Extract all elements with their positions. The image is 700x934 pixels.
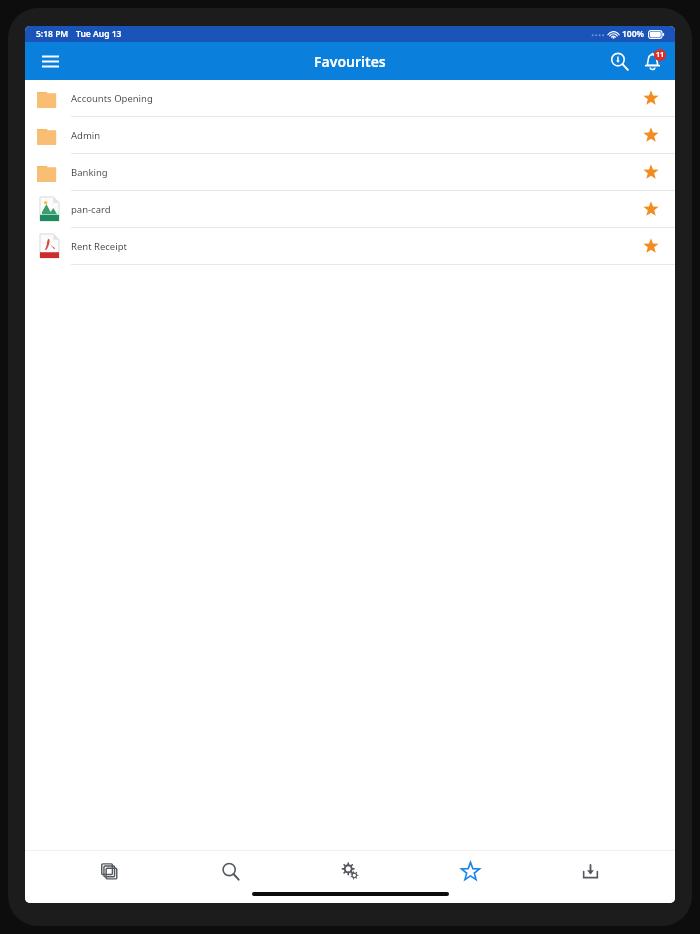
staticText: pan-card xyxy=(71,203,111,216)
button[interactable]: Search xyxy=(604,46,634,76)
button[interactable]: Favourite xyxy=(634,155,668,189)
button[interactable]: Rent Receipt xyxy=(25,228,675,264)
button[interactable]: Documents xyxy=(75,851,145,891)
button[interactable]: Favourites xyxy=(435,851,505,891)
button[interactable]: Accounts Opening xyxy=(25,80,675,116)
button[interactable]: Menu xyxy=(33,44,67,78)
staticText: Admin xyxy=(71,129,101,142)
button[interactable]: Admin xyxy=(25,117,675,153)
button[interactable]: pan-card xyxy=(25,191,675,227)
button[interactable]: Notifications xyxy=(637,46,667,76)
button[interactable]: Banking xyxy=(25,154,675,190)
button[interactable]: Search xyxy=(195,851,265,891)
button[interactable]: Favourite xyxy=(634,81,668,115)
button[interactable]: Downloads xyxy=(555,851,625,891)
button[interactable]: Settings xyxy=(315,851,385,891)
staticText: Accounts Opening xyxy=(71,92,153,105)
staticText: Rent Receipt xyxy=(71,240,127,253)
staticText: Favourites xyxy=(314,52,386,71)
button[interactable]: Favourite xyxy=(634,192,668,226)
staticText: 11 xyxy=(656,50,665,60)
staticText: 5:18 PM xyxy=(36,28,69,40)
staticText: Tue Aug 13 xyxy=(76,28,122,40)
staticText: Banking xyxy=(71,166,108,179)
button[interactable]: Favourite xyxy=(634,118,668,152)
button[interactable]: Favourite xyxy=(634,229,668,263)
staticText: 100% xyxy=(622,28,645,40)
